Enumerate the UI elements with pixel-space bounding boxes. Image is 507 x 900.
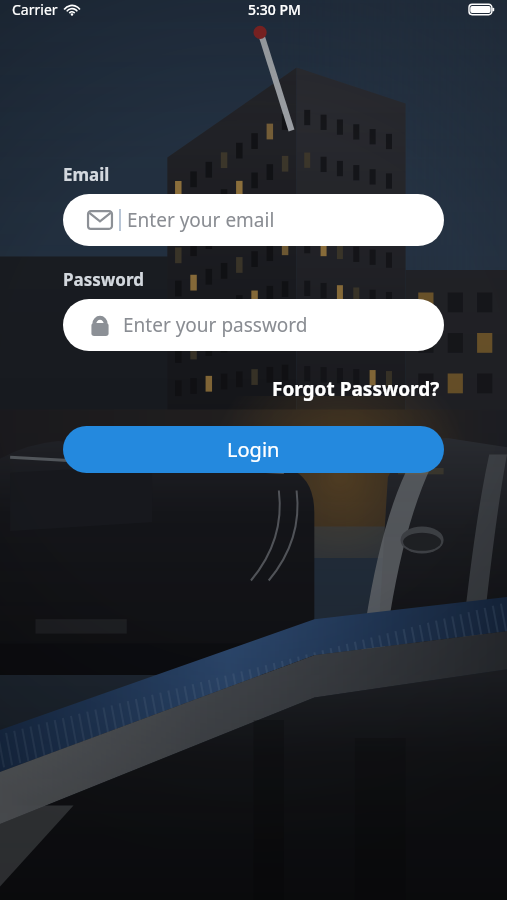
- staticText: Enter your email: [127, 207, 275, 233]
- staticText: Login: [227, 436, 280, 463]
- staticText: Password: [63, 268, 144, 291]
- button[interactable]: Enter your password: [63, 299, 444, 351]
- button[interactable]: Login: [63, 426, 444, 473]
- staticText: Carrier: [12, 0, 58, 19]
- button[interactable]: Forgot Password?: [268, 373, 444, 405]
- staticText: Email: [63, 163, 110, 186]
- staticText: Forgot Password?: [272, 376, 440, 402]
- staticText: Enter your password: [123, 312, 308, 338]
- button[interactable]: Enter your email: [63, 194, 444, 246]
- staticText: 5:30 PM: [248, 0, 301, 19]
